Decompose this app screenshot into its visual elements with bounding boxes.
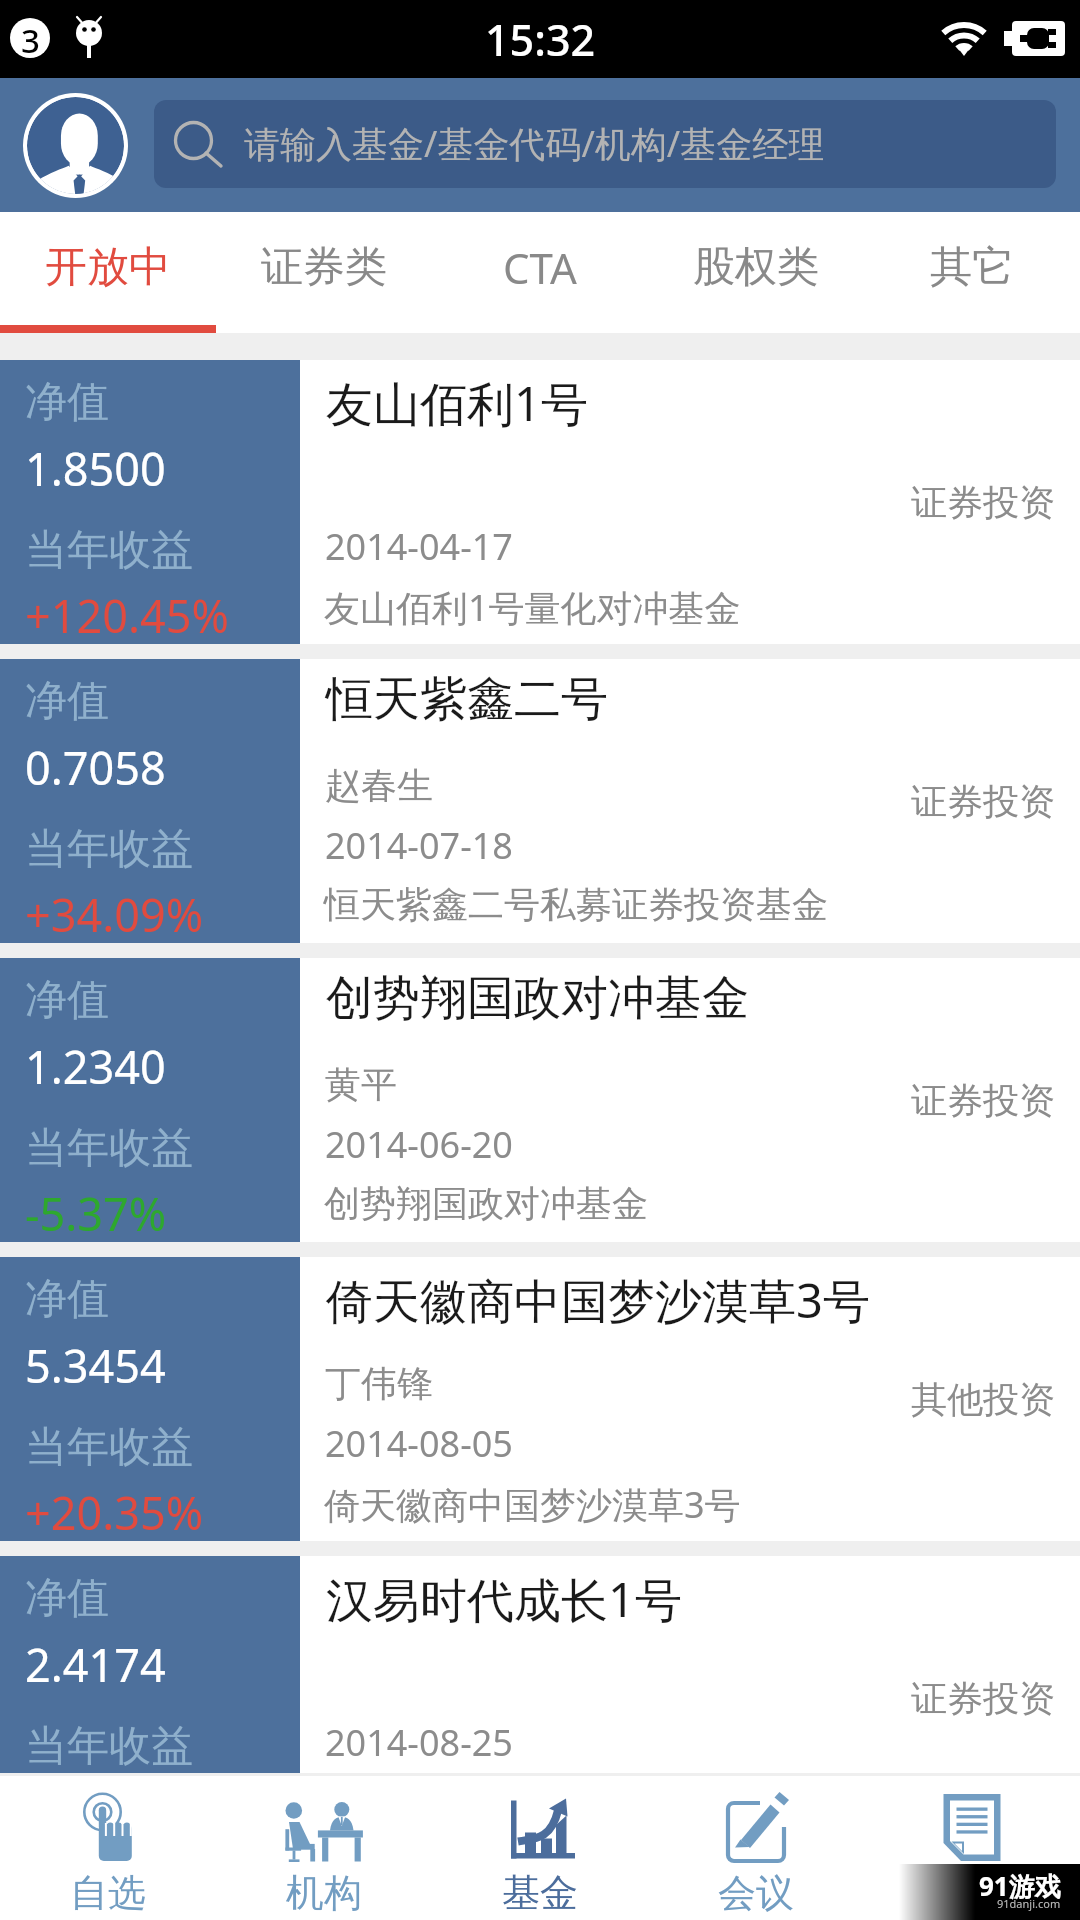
button[interactable]: 股权类 [648,212,864,333]
staticText: 自选 [70,1869,146,1917]
staticText: 汉易时代成长1号 [326,1567,682,1631]
staticText: 股权类 [693,241,819,294]
staticText: 恒天紫鑫二号 [326,670,608,729]
staticText: 友山佰利1号 [326,371,588,435]
staticText: 证券投资 [911,779,1055,824]
staticText: 证券类 [261,241,387,294]
staticText: 当年收益 [25,524,193,577]
button[interactable]: 净值 [0,1257,1080,1541]
staticText: 2014-04-17 [325,522,513,571]
staticText: 恒天紫鑫二号私募证券投资基金 [324,882,828,927]
staticText: 净值 [25,1572,109,1625]
staticText: +20.35% [25,1482,204,1543]
staticText: 证券投资 [911,1078,1055,1123]
staticText: 净值 [25,1273,109,1326]
staticText: 会议 [718,1869,794,1917]
staticText: 15:32 [485,10,596,69]
staticText: 2014-07-18 [325,821,513,870]
staticText: -5.37% [25,1183,167,1244]
staticText: 开放中 [45,241,171,294]
staticText: 91游戏 [979,1868,1061,1904]
staticText: 当年收益 [25,1122,193,1175]
button[interactable]: 机构 [216,1773,432,1920]
staticText: 5.3454 [25,1335,166,1396]
staticText: 1.8500 [25,438,166,499]
staticText: 当年收益 [25,823,193,876]
button[interactable]: 开放中 [0,212,216,333]
button[interactable]: 基金 [432,1773,648,1920]
staticText: 净值 [25,675,109,728]
button[interactable]: 净值 [0,659,1080,943]
staticText: 净值 [25,376,109,429]
staticText: 2014-08-05 [325,1419,513,1468]
staticText: 当年收益 [25,1421,193,1474]
staticText: +120.45% [25,585,229,646]
staticText: 创势翔国政对冲基金 [326,969,749,1028]
staticText: 91danji.com [997,1896,1061,1911]
staticText: 资讯 [934,1869,1010,1917]
staticText: 创势翔国政对冲基金 [324,1181,648,1226]
staticText: 倚天徽商中国梦沙漠草3号 [326,1268,870,1332]
staticText: CTA [503,239,577,296]
button[interactable]: CTA [432,212,648,333]
button[interactable]: 证券类 [216,212,432,333]
button[interactable]: 请输入基金/基金代码/机构/基金经理 [154,100,1056,188]
staticText: 请输入基金/基金代码/机构/基金经理 [244,119,825,168]
staticText: 当年收益 [25,1720,193,1773]
staticText: 机构 [286,1869,362,1917]
staticText: 2014-06-20 [325,1120,513,1169]
staticText: 2.4174 [25,1634,166,1695]
staticText: 赵春生 [325,763,433,808]
button[interactable]: 净值 [0,958,1080,1242]
staticText: 净值 [25,974,109,1027]
staticText: 其它 [930,241,1014,294]
staticText: 其他投资 [911,1377,1055,1422]
button[interactable]: 净值 [0,1556,1080,1773]
staticText: 倚天徽商中国梦沙漠草3号 [324,1480,741,1529]
staticText: 3 [21,18,40,58]
button[interactable]: 自选 [0,1773,216,1920]
staticText: 1.2340 [25,1036,166,1097]
staticText: 丁伟锋 [325,1361,433,1406]
staticText: 友山佰利1号量化对冲基金 [324,583,741,632]
button[interactable]: 净值 [0,360,1080,644]
staticText: 证券投资 [911,480,1055,525]
staticText: 黄平 [325,1062,397,1107]
button[interactable]: 资讯 [864,1773,1080,1920]
button[interactable]: Profile [23,93,128,198]
button[interactable]: 其它 [864,212,1080,333]
staticText: 基金 [502,1869,578,1917]
staticText: +34.09% [25,884,204,945]
staticText: 2014-08-25 [325,1718,513,1767]
staticText: 证券投资 [911,1676,1055,1721]
button[interactable]: 会议 [648,1773,864,1920]
staticText: 0.7058 [25,737,166,798]
